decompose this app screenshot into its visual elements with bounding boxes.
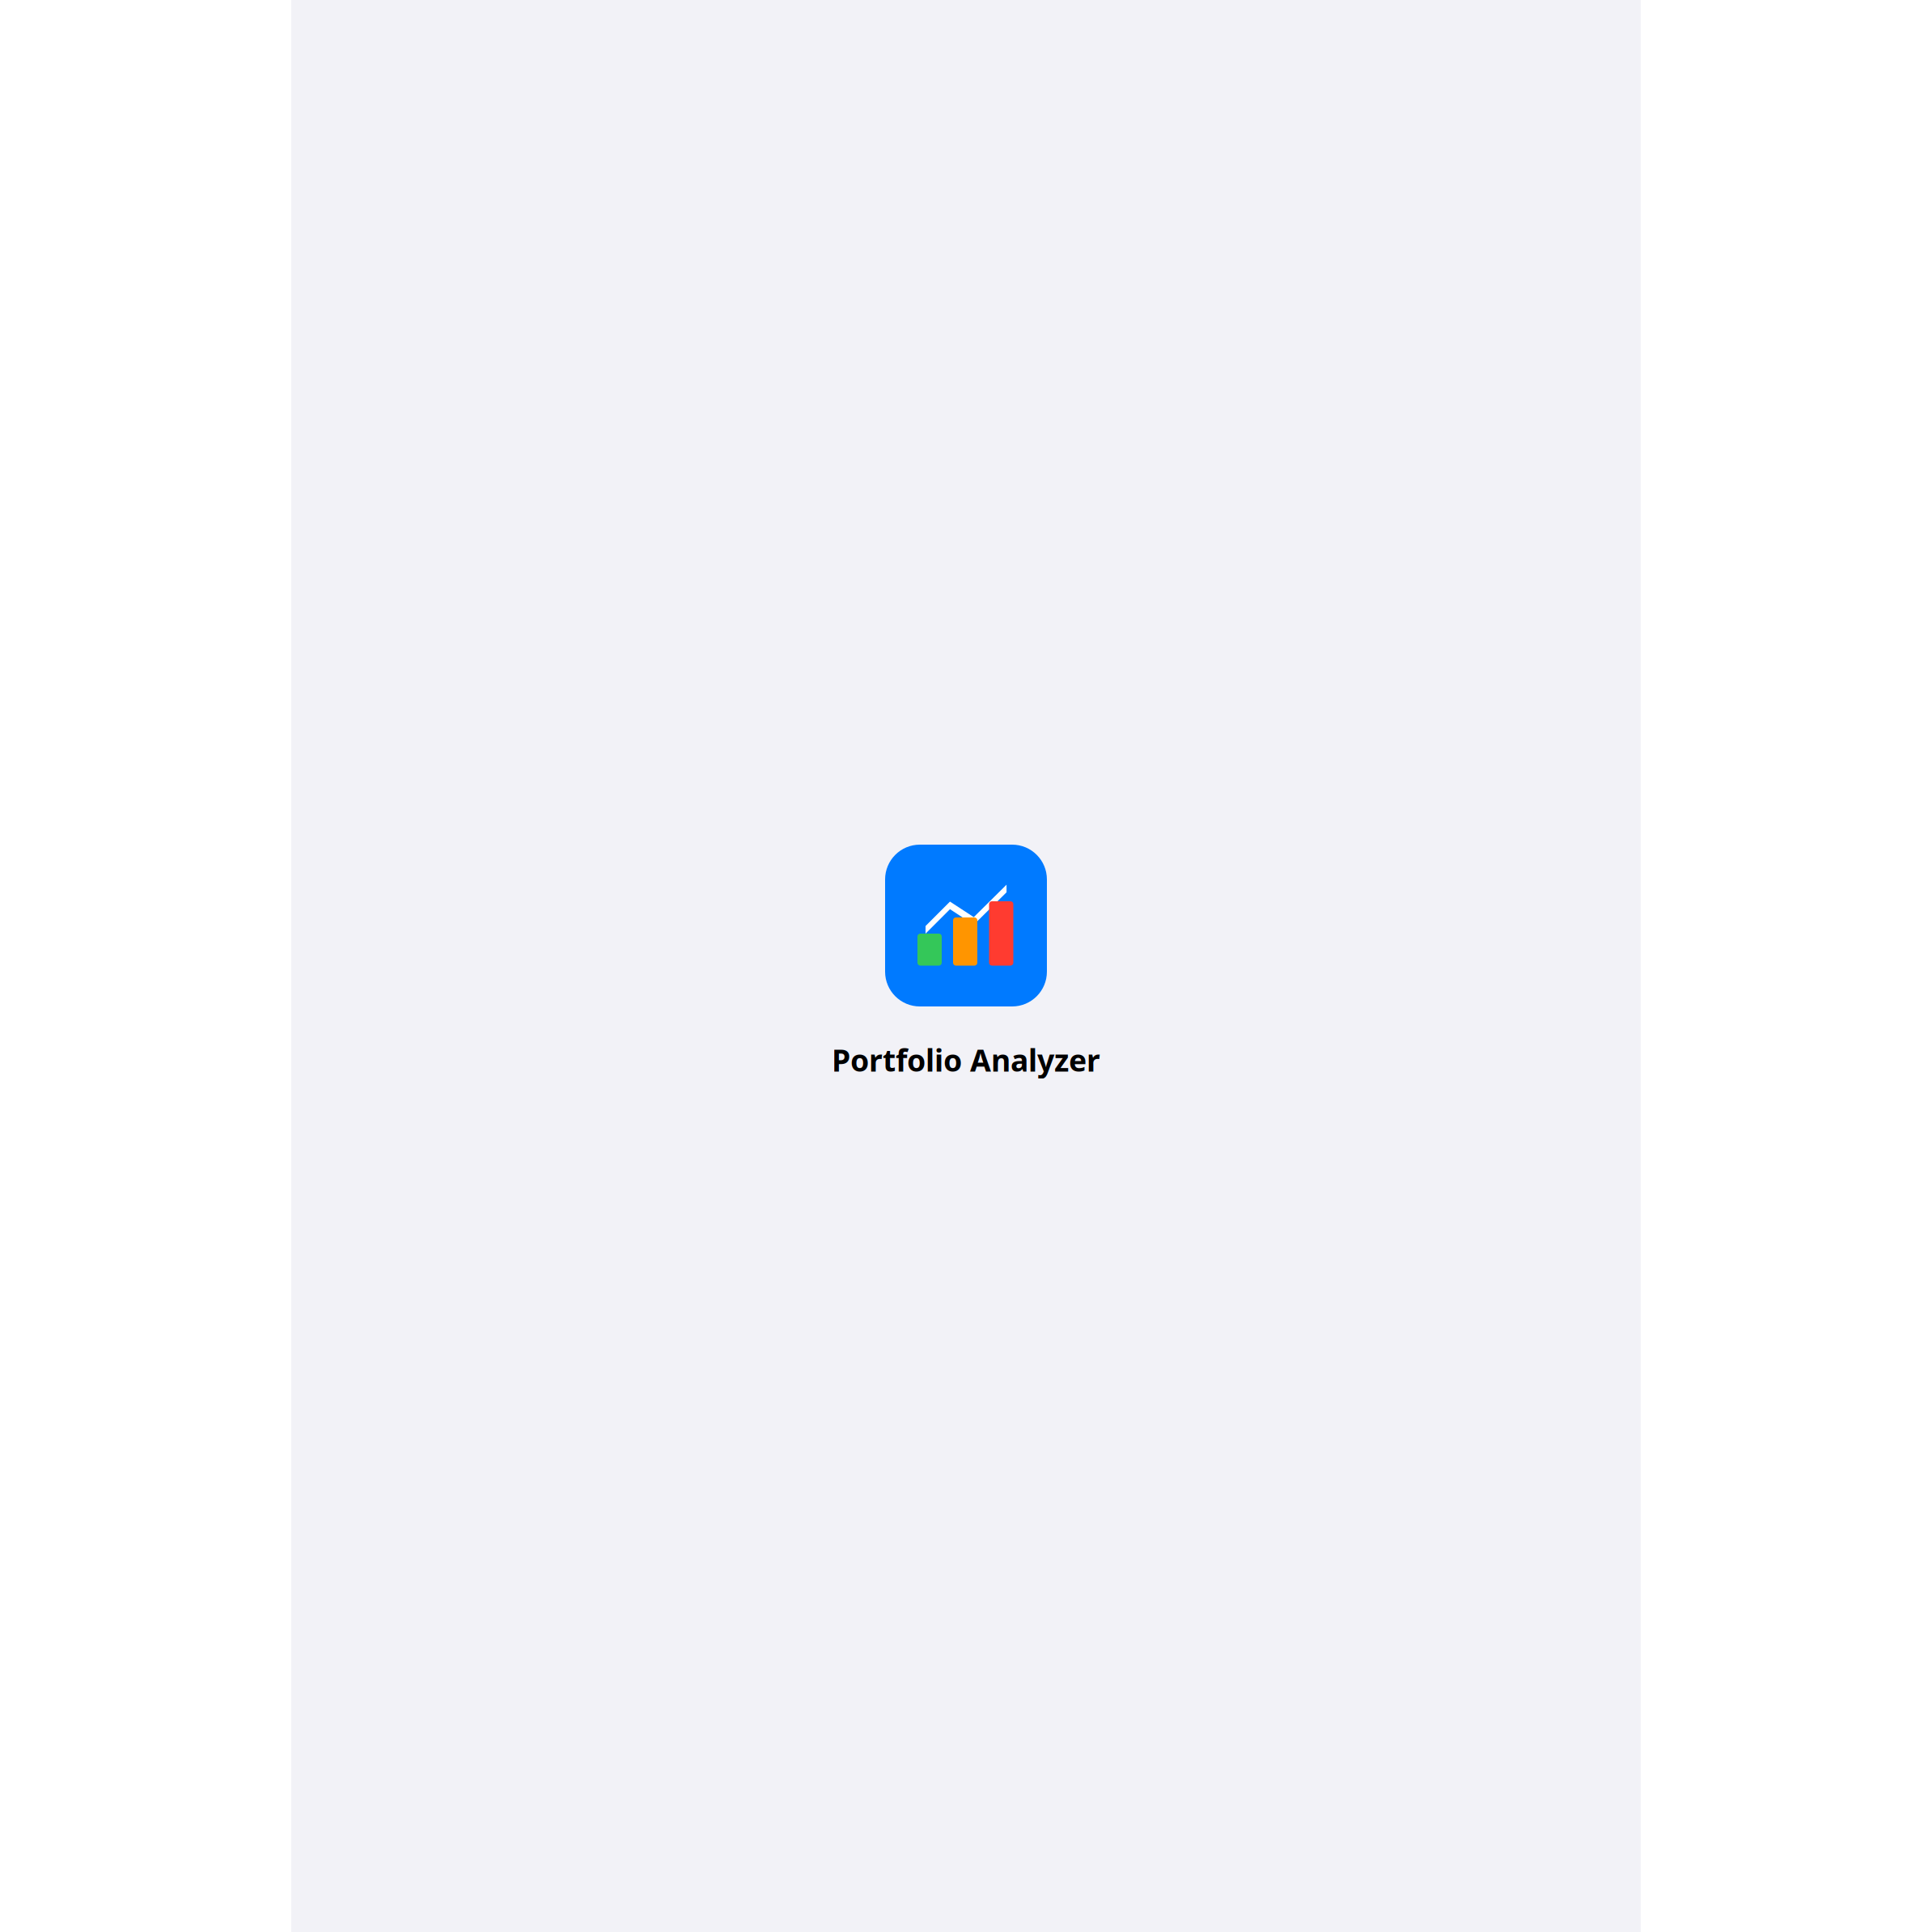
staticText: Portfolio Analyzer (832, 1040, 1100, 1080)
